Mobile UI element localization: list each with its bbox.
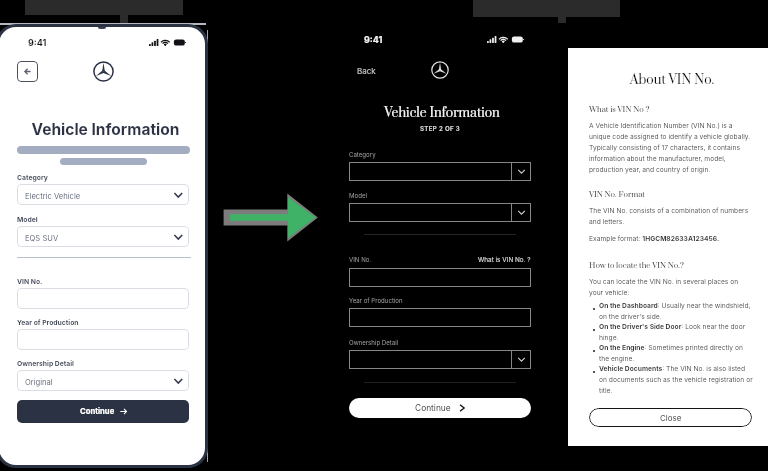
staticText: Ownership Detail	[349, 339, 399, 346]
staticText: The VIN No. consists of a combination of…	[589, 207, 753, 226]
button[interactable]: Close	[589, 408, 752, 427]
staticText: VIN No.	[349, 256, 372, 263]
button[interactable]: Original	[17, 370, 189, 391]
button[interactable]	[349, 308, 531, 327]
staticText: On the Engine: Sometimes printed directl…	[599, 344, 753, 363]
staticText: Back	[357, 66, 376, 76]
staticText: Year of Production	[349, 297, 403, 304]
staticText: A Vehicle Identification Number (VIN No.…	[589, 122, 753, 174]
button[interactable]	[349, 162, 531, 181]
button[interactable]	[349, 350, 531, 369]
staticText: Category	[17, 173, 48, 181]
button[interactable]	[17, 329, 189, 350]
button[interactable]	[349, 203, 531, 222]
staticText: STEP 2 OF 3	[334, 125, 546, 133]
staticText: On the Driver's Side Door: Look near the…	[599, 323, 753, 342]
staticText: Vehicle Information	[4, 120, 205, 139]
staticText: Continue	[415, 403, 451, 413]
staticText: Model	[17, 215, 38, 223]
staticText: Model	[349, 192, 367, 199]
staticText: VIN No.	[17, 277, 43, 285]
staticText: What is VIN No. ?	[478, 256, 531, 264]
staticText: What is VIN No ?	[589, 105, 753, 115]
staticText: Electric Vehicle	[25, 192, 81, 201]
staticText: You can locate the VIN No. in several pl…	[589, 278, 753, 297]
button[interactable]: Back	[357, 66, 376, 76]
staticText: Vehicle Documents: The VIN No. is also l…	[599, 365, 753, 395]
button[interactable]: What is VIN No. ?	[478, 256, 531, 264]
staticText: About VIN No.	[572, 72, 768, 89]
staticText: EQS SUV	[25, 234, 59, 243]
button[interactable]: Continue	[17, 400, 189, 423]
staticText: VIN No. Format	[589, 190, 753, 200]
button[interactable]: Electric Vehicle	[17, 184, 189, 205]
staticText: Continue	[80, 407, 115, 416]
staticText: How to locate the VIN No.?	[589, 261, 753, 271]
staticText: Category	[349, 151, 376, 158]
button[interactable]: EQS SUV	[17, 226, 189, 247]
staticText: 9:41	[364, 34, 383, 45]
button[interactable]	[349, 268, 531, 287]
staticText: Close	[660, 413, 682, 423]
button[interactable]: Next step	[220, 188, 324, 244]
button[interactable]	[17, 288, 189, 309]
staticText: Vehicle Information	[336, 105, 548, 122]
staticText: Ownership Detail	[17, 359, 74, 367]
staticText: Original	[25, 378, 53, 387]
staticText: On the Dashboard: Usually near the winds…	[599, 302, 753, 321]
button[interactable]: Continue	[349, 398, 531, 418]
staticText: 9:41	[28, 37, 47, 48]
button[interactable]: Back	[17, 61, 38, 82]
staticText: Example format: 1HGCM82633A123456.	[589, 235, 753, 243]
staticText: Year of Production	[17, 318, 79, 326]
